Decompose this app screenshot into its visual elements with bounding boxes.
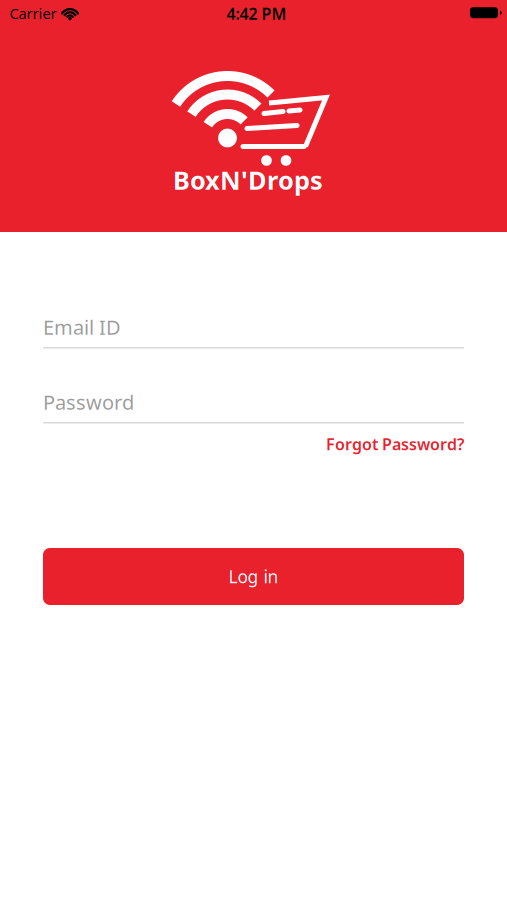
staticText: Forgot Password?: [326, 433, 464, 455]
staticText: Log in: [228, 565, 278, 588]
button[interactable]: Email ID: [43, 308, 464, 348]
button[interactable]: Password: [43, 383, 464, 423]
staticText: Carrier: [9, 3, 56, 23]
button[interactable]: Log in: [43, 548, 464, 605]
staticText: BoxN'Drops: [173, 163, 323, 197]
staticText: Email ID: [43, 314, 121, 340]
staticText: Password: [43, 389, 134, 415]
button[interactable]: Forgot Password?: [326, 433, 464, 455]
staticText: 4:42 PM: [226, 3, 286, 24]
